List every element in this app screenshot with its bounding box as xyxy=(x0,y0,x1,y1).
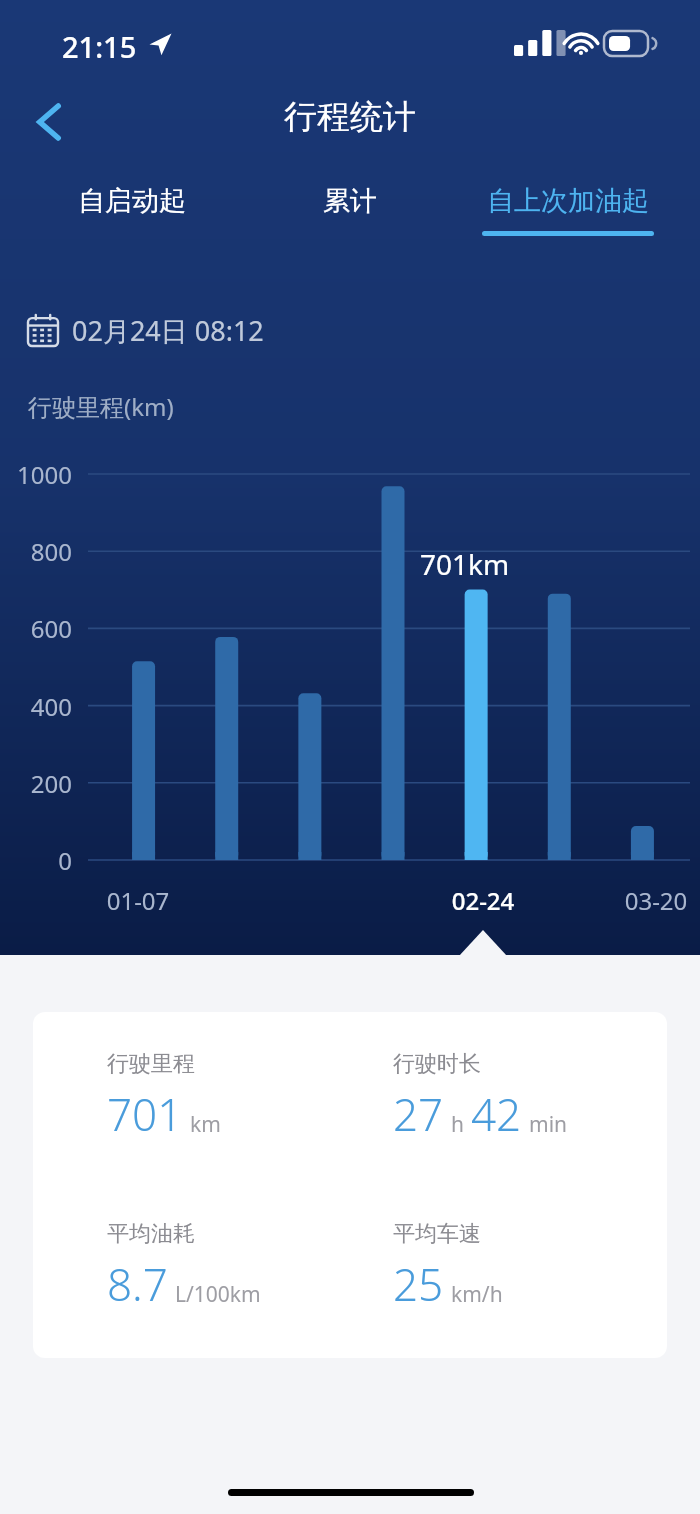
button[interactable]: Back xyxy=(14,86,84,156)
staticText: 行驶时长 xyxy=(393,1050,481,1078)
staticText: 累计 xyxy=(323,184,377,218)
staticText: 25 xyxy=(393,1254,444,1314)
staticText: 701 xyxy=(107,1084,183,1144)
button[interactable]: 平均油耗 xyxy=(33,1220,350,1314)
button[interactable]: 自启动起 xyxy=(32,170,232,250)
button[interactable]: 行驶里程 xyxy=(33,1050,350,1144)
staticText: 800 xyxy=(0,535,72,568)
staticText: 行程统计 xyxy=(0,96,700,138)
staticText: 200 xyxy=(0,767,72,800)
staticText: 行驶里程(km) xyxy=(28,390,174,423)
button[interactable]: 平均车速 xyxy=(350,1220,667,1314)
staticText: 03-20 xyxy=(612,884,700,917)
staticText: km/h xyxy=(451,1280,503,1309)
button[interactable]: 自上次加油起 xyxy=(468,170,668,250)
staticText: 400 xyxy=(0,690,72,723)
staticText: h xyxy=(451,1110,464,1139)
staticText: 701km xyxy=(420,545,510,583)
staticText: L/100km xyxy=(175,1280,261,1309)
staticText: 600 xyxy=(0,612,72,645)
staticText: 42 xyxy=(471,1084,522,1144)
staticText: 行驶里程 xyxy=(107,1050,195,1078)
staticText: km xyxy=(190,1110,221,1139)
staticText: 02-24 xyxy=(439,884,527,917)
button[interactable]: 累计 xyxy=(250,170,450,250)
staticText: 01-07 xyxy=(94,884,182,917)
staticText: 平均油耗 xyxy=(107,1220,195,1248)
button[interactable]: 行驶时长 xyxy=(350,1050,667,1144)
staticText: 8.7 xyxy=(107,1254,168,1314)
staticText: 27 xyxy=(393,1084,444,1144)
button[interactable]: 行驶里程 xyxy=(33,1012,667,1358)
staticText: 21:15 xyxy=(62,27,137,66)
staticText: 0 xyxy=(0,844,72,877)
staticText: 02月24日 08:12 xyxy=(72,312,264,349)
staticText: 自上次加油起 xyxy=(487,184,649,218)
staticText: 平均车速 xyxy=(393,1220,481,1248)
staticText: 自启动起 xyxy=(78,184,186,218)
staticText: min xyxy=(529,1110,568,1139)
staticText: 1000 xyxy=(0,458,72,491)
